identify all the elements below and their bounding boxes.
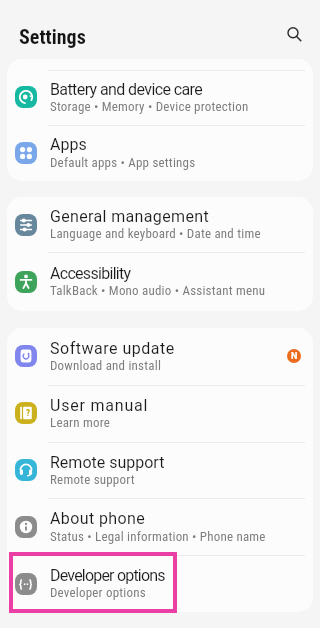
staticText: Accessibility bbox=[50, 264, 131, 283]
staticText: Learn more bbox=[50, 415, 110, 430]
staticText: TalkBack • Mono audio • Assistant menu bbox=[50, 283, 266, 298]
staticText: General management bbox=[50, 207, 210, 226]
staticText: Download and install bbox=[50, 358, 162, 373]
staticText: Developer options bbox=[50, 566, 165, 585]
staticText: ? bbox=[26, 408, 31, 419]
staticText: About phone bbox=[50, 509, 146, 528]
staticText: Developer options bbox=[50, 585, 146, 600]
staticText: { bbox=[19, 578, 23, 591]
staticText: Storage • Memory • Device protection bbox=[50, 99, 249, 114]
staticText: Battery and device care bbox=[50, 80, 203, 99]
staticText: Default apps • App settings bbox=[50, 155, 196, 170]
staticText: User manual bbox=[50, 396, 149, 415]
staticText: Status • Legal information • Phone name bbox=[50, 529, 266, 544]
staticText: } bbox=[29, 578, 33, 591]
staticText: N bbox=[291, 351, 298, 362]
staticText: Remote support bbox=[50, 472, 135, 487]
staticText: Settings bbox=[19, 25, 86, 48]
staticText: Apps bbox=[50, 135, 87, 154]
staticText: Software update bbox=[50, 339, 175, 358]
staticText: Remote support bbox=[50, 453, 165, 472]
staticText: Language and keyboard • Date and time bbox=[50, 226, 261, 241]
